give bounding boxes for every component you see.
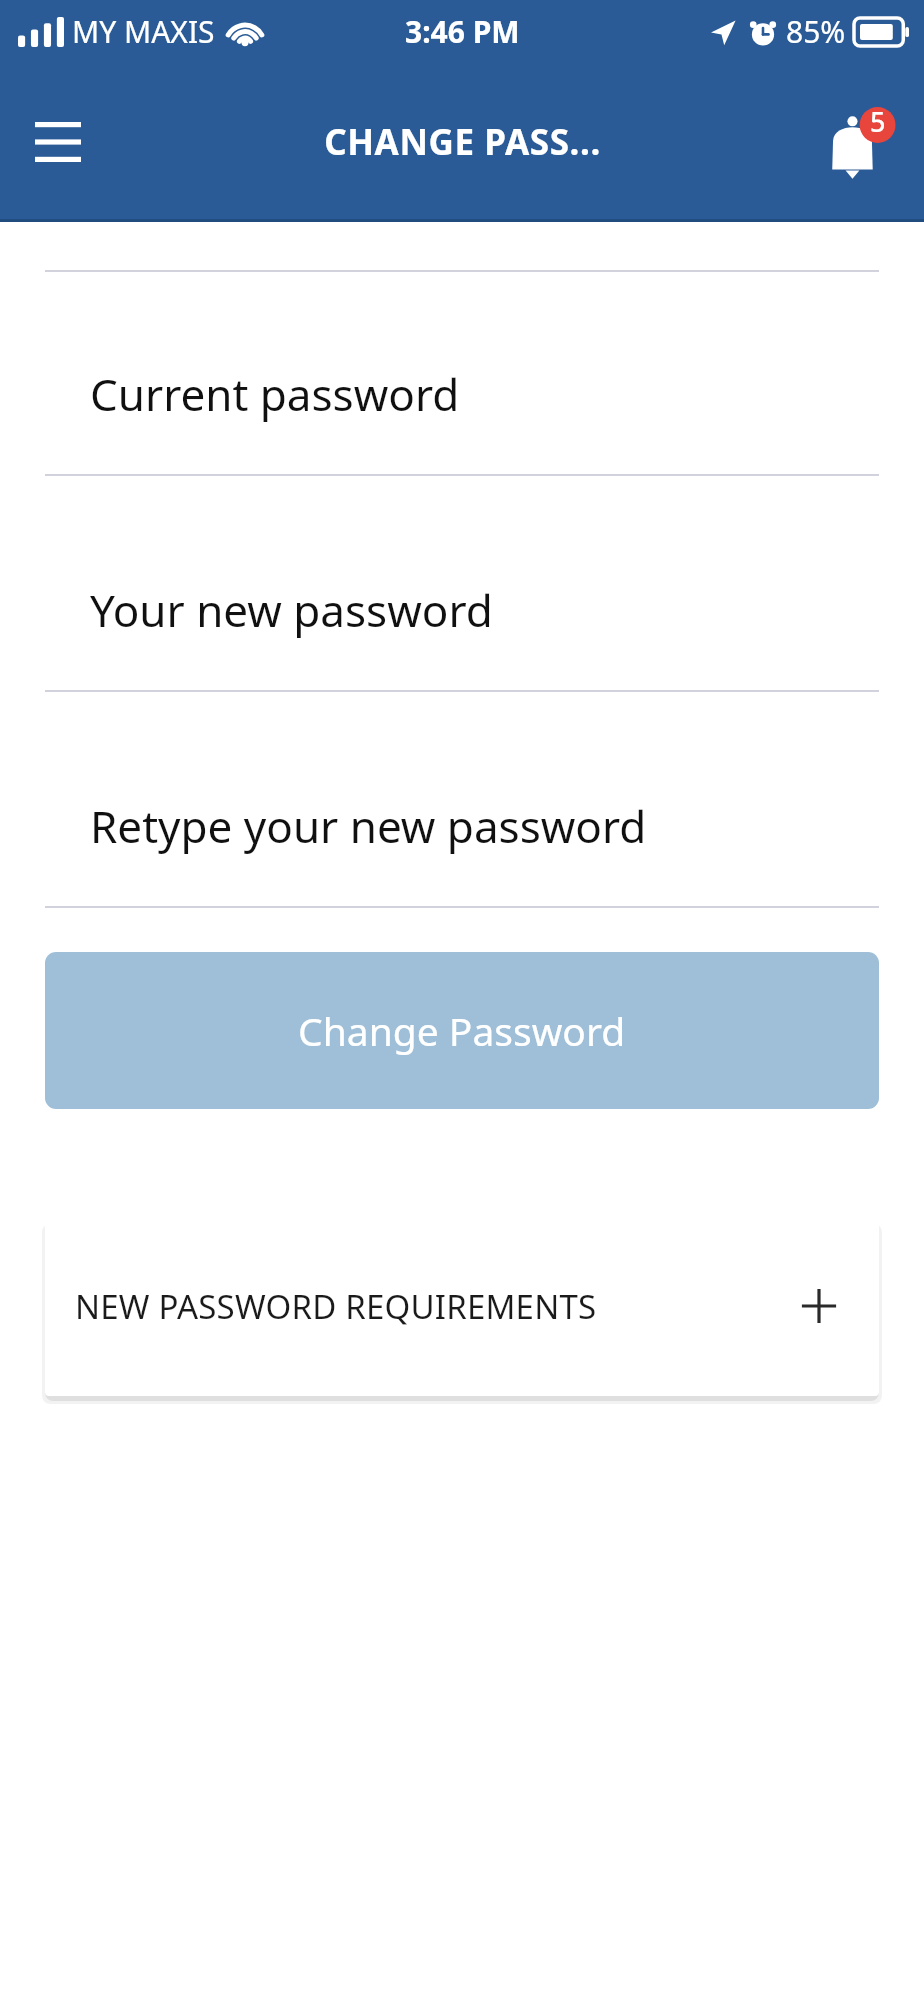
button[interactable]: Current password: [45, 364, 879, 476]
button[interactable]: NEW PASSWORD REQUIREMENTS: [45, 1216, 879, 1396]
staticText: CHANGE PASS...: [324, 118, 601, 166]
button[interactable]: Expand requirements: [791, 1278, 847, 1334]
button[interactable]: Notifications, 5 unread: [810, 94, 906, 190]
staticText: NEW PASSWORD REQUIREMENTS: [75, 1284, 791, 1329]
staticText: Change Password: [298, 1004, 626, 1057]
staticText: 5: [870, 103, 886, 140]
button[interactable]: Change Password: [45, 952, 879, 1109]
button[interactable]: Your new password: [45, 580, 879, 692]
staticText: MY MAXIS: [72, 11, 215, 52]
staticText: Retype your new password: [90, 796, 647, 856]
staticText: Your new password: [90, 580, 493, 640]
button[interactable]: Retype your new password: [45, 796, 879, 908]
staticText: 85%: [786, 11, 846, 52]
staticText: Current password: [90, 364, 460, 424]
button[interactable]: Open navigation menu: [26, 110, 90, 174]
staticText: 3:46 PM: [405, 11, 520, 52]
